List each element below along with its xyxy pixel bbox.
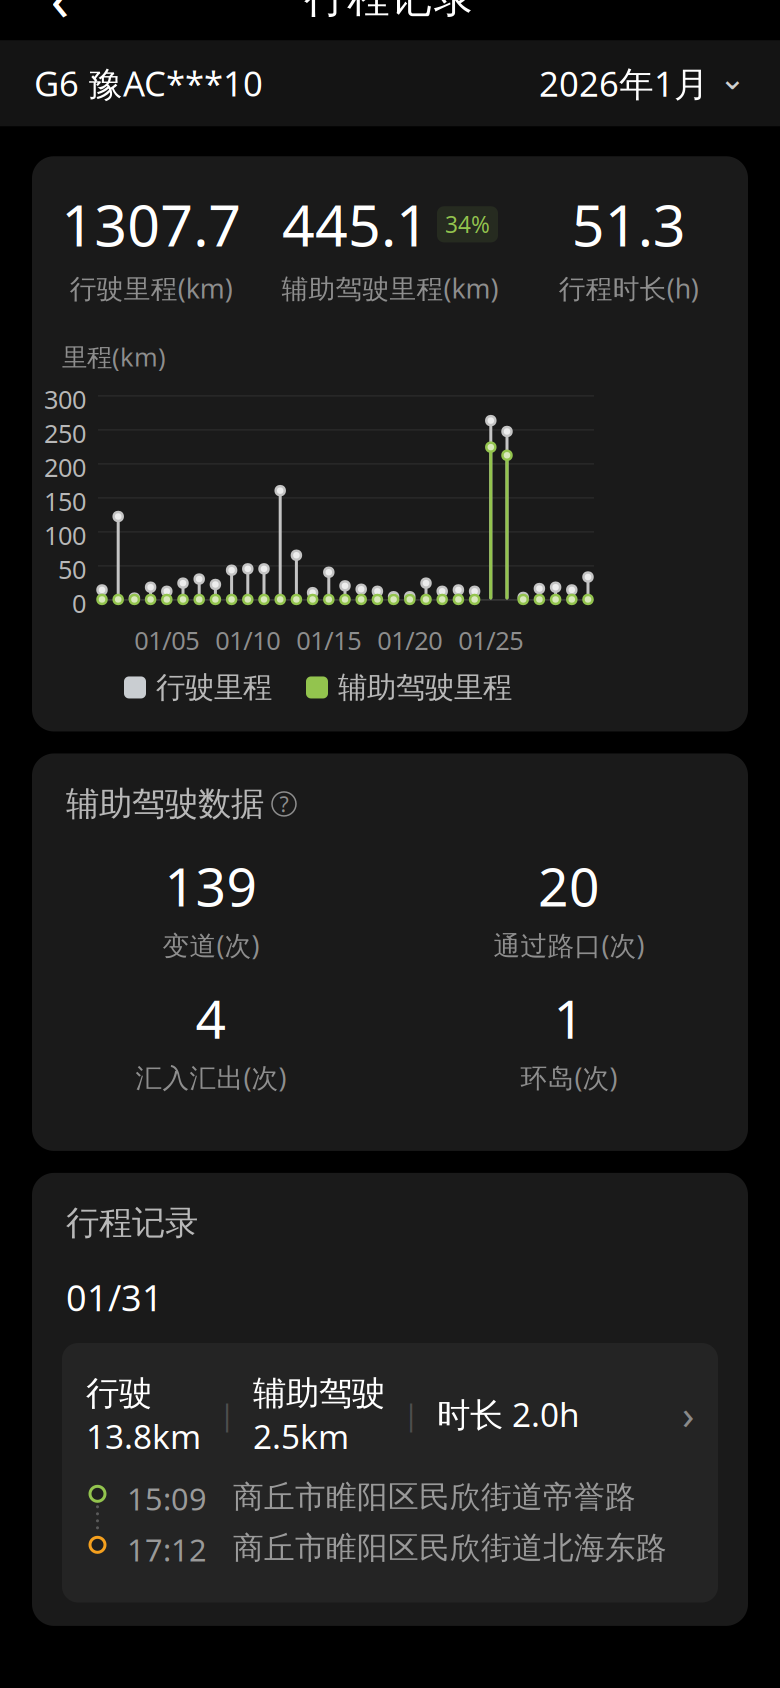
staticText: 17:12 (127, 1529, 207, 1570)
staticText: 时长 2.0h (437, 1392, 580, 1436)
staticText: 商丘市睢阳区民欣街道帝誉路 (233, 1478, 636, 1516)
staticText: 辅助驾驶里程(km) (281, 270, 498, 306)
staticText: | (403, 1395, 419, 1434)
staticText: 01/15 (296, 623, 361, 657)
staticText: 250 (44, 416, 86, 450)
staticText: 行驶里程 (156, 669, 272, 705)
staticText: 0 (72, 586, 86, 620)
button[interactable]: 返回 (32, 0, 88, 25)
staticText: 商丘市睢阳区民欣街道北海东路 (233, 1529, 667, 1567)
staticText: 50 (58, 552, 86, 586)
button[interactable]: G6 豫AC***10 (0, 40, 780, 126)
staticText: 34% (445, 209, 490, 239)
staticText: 01/25 (458, 623, 523, 657)
staticText: 100 (44, 518, 86, 552)
staticText: ⌄ (719, 60, 746, 96)
staticText: › (682, 1387, 694, 1441)
staticText: 200 (44, 450, 86, 484)
staticText: 01/10 (215, 623, 280, 657)
staticText: 里程(km) (62, 340, 166, 373)
staticText: 150 (44, 484, 86, 518)
staticText: 4 (195, 983, 226, 1053)
staticText: 1 (553, 983, 584, 1053)
staticText: ? (279, 790, 288, 818)
staticText: 行程记录 (66, 1202, 198, 1243)
staticText: 行程记录 (304, 0, 476, 23)
staticText: 2026年1月 (539, 60, 709, 106)
staticText: 变道(次) (162, 927, 259, 963)
staticText: 辅助驾驶数据 (66, 783, 264, 824)
staticText: 1307.7 (61, 186, 241, 262)
staticText: 01/05 (134, 623, 199, 657)
staticText: 20 (538, 850, 600, 921)
staticText: ‹ (50, 0, 69, 38)
staticText: 环岛(次) (520, 1059, 617, 1095)
staticText: 15:09 (127, 1478, 207, 1519)
staticText: 01/20 (377, 623, 442, 657)
staticText: G6 豫AC***10 (34, 60, 263, 106)
staticText: 300 (44, 382, 86, 416)
staticText: 139 (164, 850, 257, 921)
staticText: 通过路口(次) (493, 927, 644, 963)
staticText: 行程时长(h) (559, 270, 699, 306)
staticText: 01/31 (66, 1273, 163, 1321)
staticText: 行驶 13.8km (86, 1370, 201, 1458)
staticText: | (219, 1395, 235, 1434)
staticText: 行驶里程(km) (70, 270, 233, 306)
staticText: 51.3 (572, 186, 686, 262)
button[interactable]: 行驶 13.8km (62, 1343, 718, 1602)
staticText: 辅助驾驶 2.5km (253, 1370, 385, 1458)
staticText: 445.1 (282, 186, 429, 262)
button[interactable]: 说明 (272, 792, 296, 816)
staticText: 汇入汇出(次) (135, 1059, 286, 1095)
staticText: 辅助驾驶里程 (338, 669, 512, 705)
